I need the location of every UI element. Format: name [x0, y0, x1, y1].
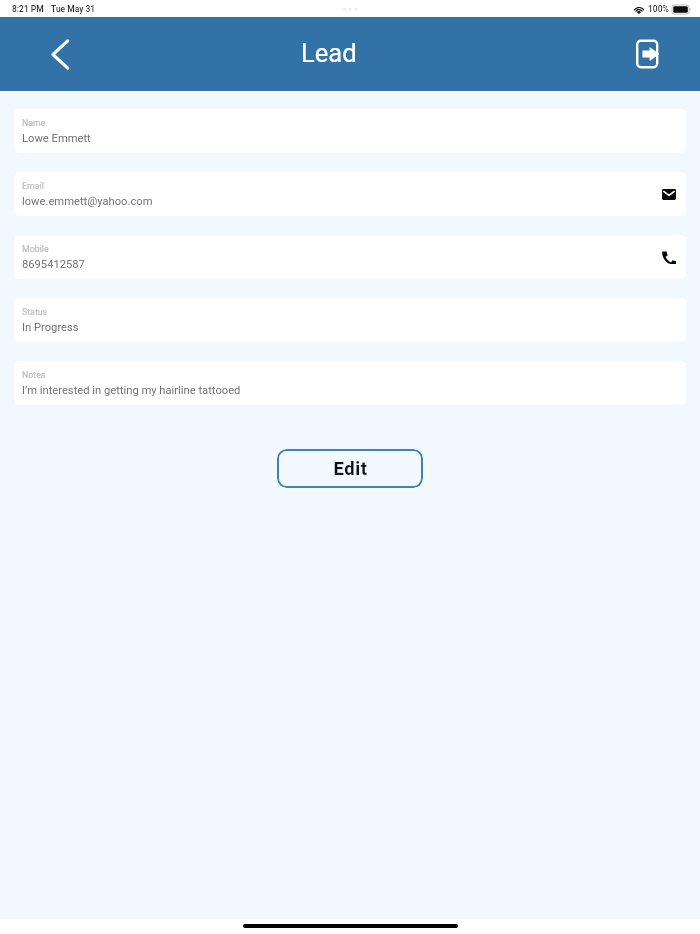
- staticText: I’m interested in getting my hairline ta…: [22, 384, 241, 397]
- staticText: lowe.emmett@yahoo.com: [22, 195, 153, 208]
- button[interactable]: Send email: [654, 179, 684, 209]
- button[interactable]: Notes: [14, 361, 686, 405]
- staticText: Status: [22, 307, 48, 317]
- staticText: 8695412587: [22, 258, 85, 271]
- staticText: Lead: [301, 38, 357, 68]
- button[interactable]: Mobile: [14, 235, 686, 279]
- button[interactable]: Call: [654, 242, 684, 272]
- staticText: Name: [22, 118, 46, 128]
- staticText: 8:21 PM: [12, 4, 44, 14]
- button[interactable]: Name: [14, 109, 686, 153]
- staticText: 100%: [648, 4, 669, 14]
- staticText: Edit: [333, 458, 368, 480]
- button[interactable]: Back: [37, 31, 83, 77]
- staticText: Email: [22, 181, 44, 191]
- staticText: Tue May 31: [51, 4, 96, 14]
- staticText: Lowe Emmett: [22, 132, 91, 145]
- staticText: Notes: [22, 370, 46, 380]
- button[interactable]: Email: [14, 172, 686, 216]
- button[interactable]: Edit: [277, 449, 423, 488]
- staticText: In Progress: [22, 321, 79, 334]
- button[interactable]: Status: [14, 298, 686, 342]
- button[interactable]: Logout: [628, 33, 670, 75]
- staticText: Mobile: [22, 244, 49, 254]
